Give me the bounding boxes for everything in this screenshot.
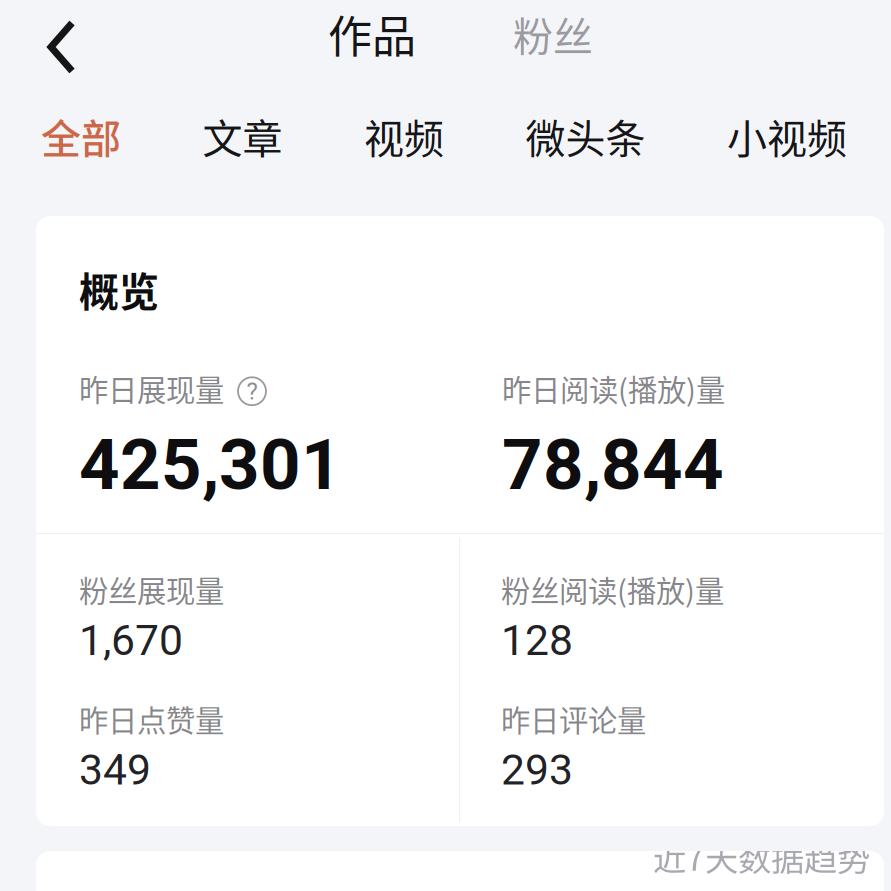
staticText: 昨日评论量 bbox=[501, 697, 646, 740]
button[interactable]: 文章 bbox=[188, 95, 296, 177]
staticText: 粉丝展现量 bbox=[79, 568, 224, 610]
staticText: 昨日展现量 bbox=[79, 367, 224, 409]
staticText: 349 bbox=[79, 745, 151, 795]
staticText: ? bbox=[246, 377, 257, 405]
button[interactable]: 全部 bbox=[27, 95, 135, 177]
staticText: 作品 bbox=[328, 2, 416, 66]
staticText: 425,301 bbox=[79, 423, 342, 506]
staticText: 78,844 bbox=[502, 423, 724, 506]
button[interactable]: 视频 bbox=[350, 95, 458, 177]
button[interactable]: Back bbox=[0, 0, 104, 91]
staticText: 视频 bbox=[364, 107, 444, 165]
staticText: 文章 bbox=[202, 107, 282, 165]
staticText: 粉丝 bbox=[513, 5, 593, 63]
staticText: 昨日阅读(播放)量 bbox=[502, 367, 725, 409]
button[interactable]: 微头条 bbox=[511, 95, 659, 177]
button[interactable]: 近7天数据趋势 bbox=[653, 832, 870, 880]
staticText: 微头条 bbox=[525, 107, 645, 165]
staticText: 昨日点赞量 bbox=[79, 697, 224, 740]
staticText: 293 bbox=[501, 745, 573, 795]
button[interactable]: 小视频 bbox=[713, 95, 861, 177]
staticText: 概览 bbox=[79, 260, 159, 318]
staticText: 粉丝阅读(播放)量 bbox=[501, 568, 724, 610]
staticText: 小视频 bbox=[727, 107, 847, 165]
staticText: 近7天数据趋势 bbox=[653, 832, 870, 880]
staticText: 1,670 bbox=[79, 615, 183, 665]
button[interactable]: About impressions bbox=[238, 374, 266, 402]
button[interactable]: 粉丝 bbox=[501, 0, 605, 72]
button[interactable]: 作品 bbox=[316, 0, 428, 75]
staticText: 全部 bbox=[41, 107, 121, 165]
staticText: 128 bbox=[501, 615, 573, 665]
